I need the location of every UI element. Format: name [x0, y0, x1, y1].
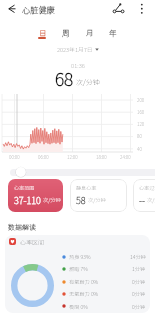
staticText: 心脏健康 [22, 3, 55, 15]
button[interactable]: 心率过速 [133, 179, 155, 212]
button[interactable]: 静息心率 [70, 179, 127, 212]
staticText: 80 [137, 133, 142, 140]
staticText: 心率过速 [139, 184, 155, 191]
staticText: 68 [55, 66, 74, 90]
staticText: 14分钟 [130, 253, 146, 261]
button[interactable] [4, 2, 18, 16]
staticText: 燃脂 7% [69, 265, 88, 273]
staticText: 40 [137, 146, 142, 153]
button[interactable] [109, 1, 125, 16]
button[interactable]: 心率区间 [5, 235, 150, 313]
staticText: 心率区间 [20, 238, 45, 247]
staticText: 06:00 [38, 154, 49, 161]
staticText: 12:00 [67, 154, 78, 161]
staticText: 次/分钟 [43, 196, 61, 204]
staticText: 次/分钟 [88, 196, 106, 204]
staticText: 次/分钟 [147, 196, 155, 204]
staticText: 0分钟 [132, 278, 146, 286]
staticText: 1分钟 [132, 265, 146, 273]
staticText: 120 [137, 121, 145, 128]
staticText: 周 [62, 27, 70, 38]
staticText: 0分钟 [132, 290, 146, 298]
staticText: 次/分钟 [76, 77, 100, 87]
button[interactable] [136, 1, 148, 16]
button[interactable]: 心率范围 [8, 179, 63, 212]
staticText: 数据解读 [8, 222, 36, 232]
staticText: 0分钟 [132, 303, 146, 311]
staticText: 37-110 [14, 193, 41, 206]
staticText: 极限 0% [69, 303, 88, 311]
staticText: 静息心率 [76, 184, 97, 191]
button[interactable]: 2023年1月7日 [0, 45, 155, 53]
staticText: 24:00 [120, 154, 131, 161]
staticText: 58 [76, 193, 86, 206]
staticText: 00:00 [9, 154, 20, 161]
button[interactable]: 月 [80, 24, 100, 40]
staticText: 日 [39, 27, 47, 38]
staticText: 200 [137, 97, 145, 104]
staticText: 心率范围 [14, 184, 35, 191]
button[interactable]: 年 [103, 24, 123, 40]
staticText: 热身 93% [69, 253, 91, 261]
staticText: -- [139, 193, 145, 206]
staticText: 01:36 [71, 61, 85, 70]
staticText: 无氧耐力 0% [69, 290, 99, 298]
staticText: 160 [137, 109, 145, 116]
staticText: 年 [109, 27, 117, 38]
staticText: 2023年1月7日 [57, 45, 93, 53]
button[interactable]: 日 [33, 24, 53, 40]
staticText: 18:00 [96, 154, 107, 161]
staticText: 有氧耐力 0% [69, 278, 99, 286]
staticText: 月 [86, 27, 94, 38]
button[interactable]: 周 [56, 24, 76, 40]
